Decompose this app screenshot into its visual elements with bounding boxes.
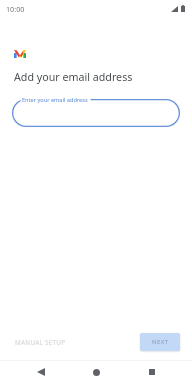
button[interactable]: NEXT	[140, 333, 180, 351]
button[interactable]	[12, 99, 180, 127]
button[interactable]: Recent apps	[141, 361, 162, 382]
staticText: Enter your email address	[22, 96, 88, 104]
button[interactable]: Home	[86, 362, 107, 383]
staticText: MANUAL SETUP	[15, 338, 66, 346]
button[interactable]: MANUAL SETUP	[10, 333, 71, 351]
staticText: Add your email address	[14, 70, 133, 85]
staticText: 10:00	[6, 4, 25, 14]
button[interactable]: Back	[30, 361, 51, 382]
staticText: NEXT	[152, 338, 169, 346]
